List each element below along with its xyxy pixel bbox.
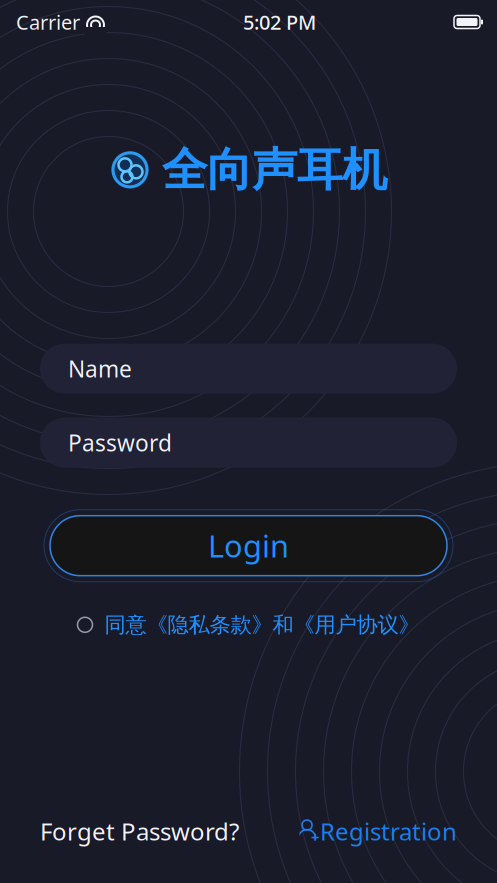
staticText: Name [68,354,132,384]
button[interactable]: Forget Password? [40,815,239,847]
staticText: Password [68,428,172,458]
button[interactable]: Name [40,344,457,394]
button[interactable]: Login [44,510,453,582]
button[interactable]: + [298,815,457,847]
staticText: Login [208,525,289,566]
staticText: Registration [320,815,457,847]
button[interactable]: Password [40,418,457,468]
staticText: 全向声耳机 [162,142,387,198]
button[interactable]: 同意《隐私条款》和《用户协议》 [77,612,419,638]
staticText: 5:02 PM [243,9,316,35]
staticText: + [311,827,319,847]
staticText: 同意《隐私条款》和《用户协议》 [104,612,419,638]
staticText: Carrier [16,9,80,35]
staticText: Forget Password? [40,815,239,847]
